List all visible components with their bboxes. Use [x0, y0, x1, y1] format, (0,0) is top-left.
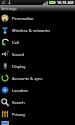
button[interactable]: Privacy: [0, 108, 75, 120]
button[interactable]: Wireless & networks: [0, 24, 75, 36]
button[interactable]: Personalize: [0, 12, 75, 24]
staticText: Sound: [12, 52, 25, 57]
button[interactable]: Call: [0, 36, 75, 48]
button[interactable]: Connect to PC: [0, 120, 75, 125]
staticText: 10:18 AM: [57, 0, 74, 5]
staticText: Location: [12, 88, 29, 93]
button[interactable]: Accounts & sync: [0, 72, 75, 84]
button[interactable]: Location: [0, 84, 75, 96]
staticText: Search: [12, 100, 25, 105]
staticText: Call: [12, 40, 19, 45]
button[interactable]: Search: [0, 96, 75, 108]
button[interactable]: Sound: [0, 48, 75, 60]
staticText: Personalize: [12, 16, 34, 21]
staticText: Privacy: [12, 112, 26, 117]
staticText: Settings: [1, 6, 17, 11]
staticText: Display: [12, 64, 26, 69]
staticText: Wireless & networks: [12, 28, 51, 33]
staticText: Accounts & sync: [12, 76, 43, 81]
button[interactable]: Display: [0, 60, 75, 72]
